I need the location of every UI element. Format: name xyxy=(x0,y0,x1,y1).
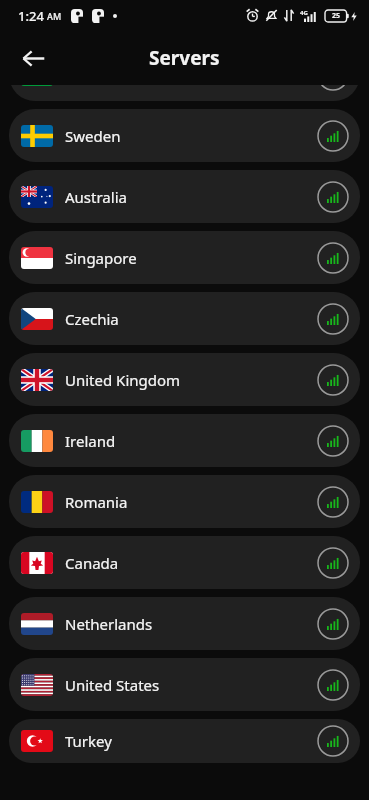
button[interactable]: Ireland xyxy=(9,414,360,467)
button[interactable]: Back xyxy=(11,36,55,80)
button[interactable]: Singapore xyxy=(9,231,360,284)
staticText: Romania xyxy=(65,492,128,512)
staticText: Turkey xyxy=(65,731,112,751)
staticText: Czechia xyxy=(65,309,119,329)
button[interactable]: Netherlands xyxy=(9,597,360,650)
staticText: Servers xyxy=(149,45,220,71)
staticText: 1:24 xyxy=(18,7,44,25)
button[interactable]: United States xyxy=(9,658,360,711)
button[interactable]: Canada xyxy=(9,536,360,589)
button[interactable]: Brazil xyxy=(9,85,360,101)
button[interactable]: Sweden xyxy=(9,109,360,162)
staticText: United States xyxy=(65,675,160,695)
button[interactable]: Turkey xyxy=(9,719,360,763)
staticText: 4G xyxy=(300,9,308,17)
staticText: Sweden xyxy=(65,126,121,146)
staticText: Ireland xyxy=(65,431,116,451)
button[interactable]: Czechia xyxy=(9,292,360,345)
staticText: Australia xyxy=(65,187,127,207)
staticText: Netherlands xyxy=(65,614,153,634)
staticText: Canada xyxy=(65,553,119,573)
staticText: Singapore xyxy=(65,248,137,268)
staticText: 25 xyxy=(332,11,341,21)
staticText: United Kingdom xyxy=(65,370,181,390)
staticText: AM xyxy=(47,10,62,22)
button[interactable]: Australia xyxy=(9,170,360,223)
button[interactable]: United Kingdom xyxy=(9,353,360,406)
button[interactable]: Romania xyxy=(9,475,360,528)
